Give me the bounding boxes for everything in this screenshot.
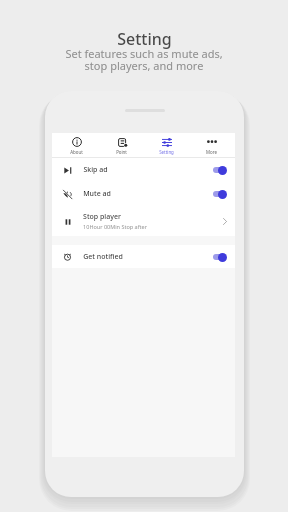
staticText: Skip ad [83, 165, 108, 175]
staticText: Stop player [83, 212, 121, 222]
staticText: Setting [117, 28, 172, 50]
staticText: Get notified [83, 252, 123, 262]
button[interactable]: Skip ad [52, 158, 235, 182]
button[interactable]: More [189, 133, 234, 157]
button[interactable]: Toggle [213, 165, 227, 175]
staticText: Point [116, 149, 127, 155]
button[interactable]: Toggle [213, 189, 227, 199]
staticText: More [206, 149, 217, 155]
staticText: Setting [159, 149, 174, 155]
button[interactable]: Point [99, 133, 144, 157]
button[interactable]: Get notified [52, 245, 235, 268]
button[interactable]: Mute ad [52, 182, 235, 206]
staticText: About [70, 149, 83, 155]
staticText: Mute ad [83, 189, 111, 199]
staticText: 10Hour 00Min Stop after [83, 223, 147, 230]
staticText: Set features such as mute ads, stop play… [65, 46, 223, 73]
button[interactable]: Setting [144, 133, 189, 157]
button[interactable]: About [54, 133, 99, 157]
button[interactable]: Toggle [213, 252, 227, 262]
button[interactable]: Stop player [52, 206, 235, 236]
